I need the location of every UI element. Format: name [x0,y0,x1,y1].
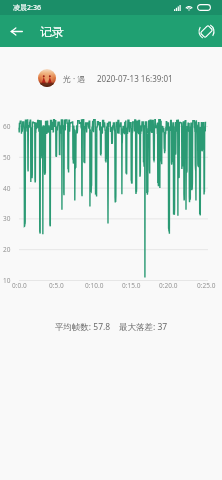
staticText: 0:20.0 [159,281,178,290]
staticText: 20 [3,245,11,254]
staticText: 30 [3,214,11,223]
staticText: 记录 [40,24,64,39]
button[interactable]: Back [0,15,32,47]
staticText: 2020-07-13 16:39:01 [97,73,173,84]
staticText: 0:5.0 [49,281,64,290]
staticText: 0:0.0 [12,281,27,290]
staticText: 0:15.0 [122,281,141,290]
staticText: 平均帧数: 57.8 最大落差: 37 [0,321,222,333]
staticText: 光 · 遇 [63,73,86,84]
staticText: 0:25.0 [197,281,216,290]
button[interactable]: Rotate screen [190,15,222,47]
staticText: 10 [3,276,11,285]
staticText: 0:10.0 [85,281,104,290]
staticText: 50 [3,153,11,162]
staticText: 40 [3,184,11,193]
staticText: 60 [3,122,11,131]
staticText: 凌晨2:36 [13,3,41,13]
